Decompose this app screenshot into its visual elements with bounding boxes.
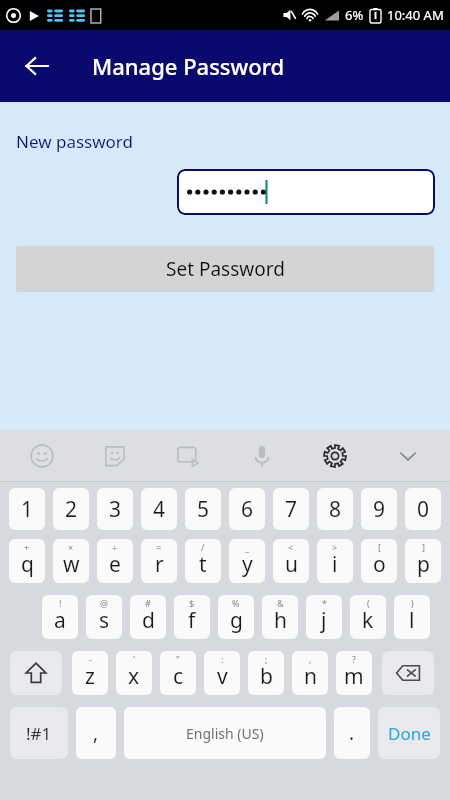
- button[interactable]: Set Password: [16, 246, 434, 292]
- staticText: New password: [16, 130, 134, 153]
- staticText: 3: [109, 495, 122, 524]
- button[interactable]: GIF: [168, 436, 208, 476]
- button[interactable]: Shift: [10, 651, 62, 695]
- staticText: #: [145, 597, 151, 609]
- button[interactable]: 5: [185, 488, 221, 530]
- staticText: n: [304, 662, 317, 691]
- button[interactable]: [: [361, 539, 397, 583]
- staticText: i: [332, 550, 338, 579]
- staticText: s: [99, 606, 110, 635]
- staticText: <: [288, 541, 294, 553]
- button[interactable]: !#1: [10, 707, 68, 759]
- staticText: b: [260, 662, 273, 691]
- button[interactable]: <: [273, 539, 309, 583]
- staticText: %: [232, 597, 240, 609]
- staticText: ": [176, 653, 180, 665]
- staticText: y: [242, 550, 253, 579]
- staticText: o: [373, 550, 386, 579]
- staticText: 9: [373, 495, 386, 524]
- button[interactable]: 6: [229, 488, 265, 530]
- staticText: /: [201, 541, 205, 553]
- button[interactable]: +: [9, 539, 45, 583]
- button[interactable]: *: [306, 595, 342, 639]
- button[interactable]: ): [394, 595, 430, 639]
- staticText: 2: [65, 495, 78, 524]
- staticText: Set Password: [166, 256, 285, 282]
- button[interactable]: 7: [273, 488, 309, 530]
- button[interactable]: $: [174, 595, 210, 639]
- staticText: =: [156, 541, 162, 553]
- button[interactable]: Voice input: [242, 436, 282, 476]
- button[interactable]: ,: [292, 651, 328, 695]
- button[interactable]: /: [185, 539, 221, 583]
- button[interactable]: ,: [76, 707, 116, 759]
- button[interactable]: English (US): [124, 707, 326, 759]
- button[interactable]: (: [350, 595, 386, 639]
- button[interactable]: Back: [16, 45, 58, 87]
- staticText: :: [221, 653, 224, 665]
- staticText: ': [133, 653, 136, 665]
- staticText: @: [100, 597, 109, 609]
- staticText: p: [417, 550, 430, 579]
- button[interactable]: &: [262, 595, 298, 639]
- staticText: ;: [265, 653, 268, 665]
- staticText: z: [85, 662, 95, 691]
- staticText: +: [24, 541, 30, 553]
- staticText: ÷: [112, 541, 118, 553]
- staticText: l: [409, 606, 415, 635]
- button[interactable]: ×: [53, 539, 89, 583]
- staticText: !: [59, 597, 62, 609]
- button[interactable]: [177, 169, 435, 215]
- staticText: 6%: [345, 6, 364, 24]
- staticText: 7: [285, 495, 298, 524]
- staticText: g: [230, 606, 243, 635]
- button[interactable]: ': [116, 651, 152, 695]
- button[interactable]: 4: [141, 488, 177, 530]
- button[interactable]: 9: [361, 488, 397, 530]
- button[interactable]: ?: [336, 651, 372, 695]
- staticText: ,: [93, 720, 99, 746]
- button[interactable]: !: [42, 595, 78, 639]
- staticText: _: [245, 541, 249, 553]
- button[interactable]: >: [317, 539, 353, 583]
- button[interactable]: :: [204, 651, 240, 695]
- staticText: a: [54, 606, 66, 635]
- staticText: ]: [422, 541, 425, 553]
- staticText: 10:40 AM: [387, 6, 444, 24]
- button[interactable]: Settings: [315, 436, 355, 476]
- staticText: ,: [309, 653, 312, 665]
- staticText: u: [285, 550, 298, 579]
- staticText: v: [217, 662, 228, 691]
- staticText: &: [277, 597, 284, 609]
- staticText: $: [189, 597, 195, 609]
- button[interactable]: 2: [53, 488, 89, 530]
- button[interactable]: ;: [248, 651, 284, 695]
- button[interactable]: 1: [9, 488, 45, 530]
- button[interactable]: =: [141, 539, 177, 583]
- staticText: t: [199, 550, 207, 579]
- button[interactable]: @: [86, 595, 122, 639]
- button[interactable]: .: [334, 707, 370, 759]
- button[interactable]: 3: [97, 488, 133, 530]
- staticText: m: [344, 662, 364, 691]
- button[interactable]: 8: [317, 488, 353, 530]
- button[interactable]: ÷: [97, 539, 133, 583]
- button[interactable]: Backspace: [382, 651, 434, 695]
- button[interactable]: Sticker: [95, 436, 135, 476]
- button[interactable]: Emoji: [22, 436, 62, 476]
- button[interactable]: ": [160, 651, 196, 695]
- button[interactable]: 0: [405, 488, 441, 530]
- button[interactable]: -: [72, 651, 108, 695]
- staticText: x: [128, 662, 140, 691]
- button[interactable]: #: [130, 595, 166, 639]
- button[interactable]: ]: [405, 539, 441, 583]
- staticText: .: [349, 720, 355, 746]
- button[interactable]: Hide keyboard: [388, 436, 428, 476]
- staticText: j: [321, 606, 327, 635]
- staticText: ?: [352, 653, 356, 665]
- staticText: 0: [417, 495, 430, 524]
- button[interactable]: _: [229, 539, 265, 583]
- staticText: 4: [153, 495, 166, 524]
- button[interactable]: %: [218, 595, 254, 639]
- button[interactable]: Done: [378, 707, 440, 759]
